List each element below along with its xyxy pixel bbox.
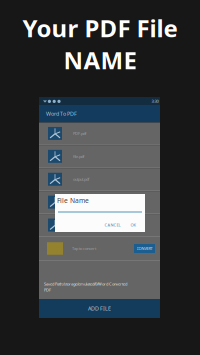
staticText: NAME xyxy=(63,44,136,76)
staticText: Saved Path:/storage/emulated/0/Word Conv… xyxy=(44,281,127,287)
staticText: report.pdf xyxy=(73,199,90,205)
staticText: OK xyxy=(130,222,135,228)
staticText: PDF.pdf xyxy=(73,131,86,136)
staticText: PDF xyxy=(44,287,51,293)
button[interactable]: PDF.pdf xyxy=(39,122,160,145)
staticText: CONVERT xyxy=(136,246,152,251)
staticText: File Name xyxy=(57,196,89,205)
button[interactable]: report.pdf xyxy=(39,191,160,214)
button[interactable]: ADD FILE xyxy=(39,299,160,318)
staticText: output.pdf xyxy=(73,177,89,182)
staticText: Tap to convert xyxy=(72,246,96,251)
button[interactable]: Tap to convert xyxy=(39,237,160,261)
staticText: Your PDF File xyxy=(22,12,177,44)
staticText: 3:30 xyxy=(151,98,158,104)
button[interactable]: CANCEL xyxy=(103,221,121,229)
staticText: ADD FILE xyxy=(88,305,111,312)
button[interactable]: file.pdf xyxy=(39,145,160,168)
staticText: file.pdf xyxy=(73,154,84,159)
button[interactable]: note.pdf xyxy=(39,214,160,237)
button[interactable]: OK xyxy=(128,221,138,229)
staticText: Word To PDF xyxy=(46,110,77,117)
staticText: CANCEL xyxy=(104,222,120,228)
button[interactable]: output.pdf xyxy=(39,168,160,191)
